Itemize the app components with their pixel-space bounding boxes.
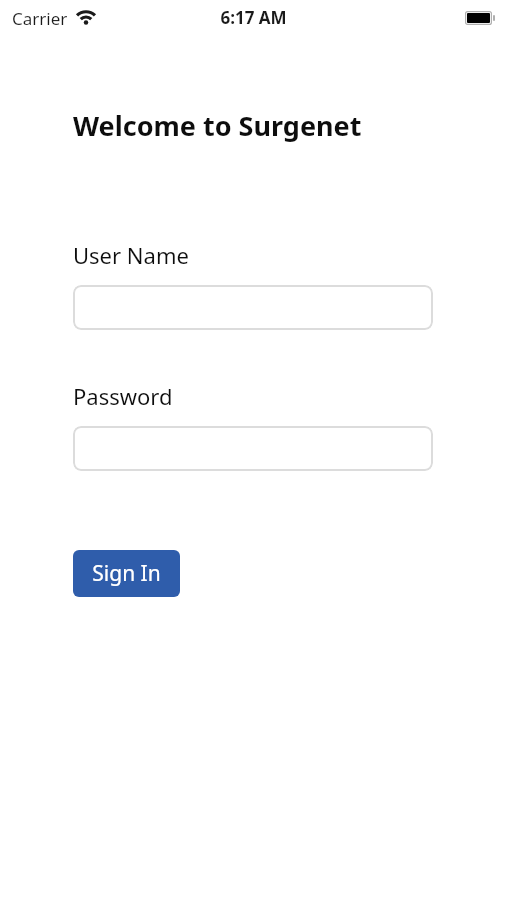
button[interactable]: Password input field: [73, 426, 433, 471]
button[interactable]: User Name input field: [73, 285, 433, 330]
button[interactable]: Sign In: [73, 550, 180, 597]
staticText: User Name: [73, 240, 189, 270]
staticText: Carrier: [12, 7, 68, 30]
staticText: 6:17 AM: [220, 6, 287, 29]
staticText: Welcome to Surgenet: [73, 107, 362, 144]
staticText: Sign In: [92, 559, 161, 588]
staticText: Password: [73, 381, 173, 411]
